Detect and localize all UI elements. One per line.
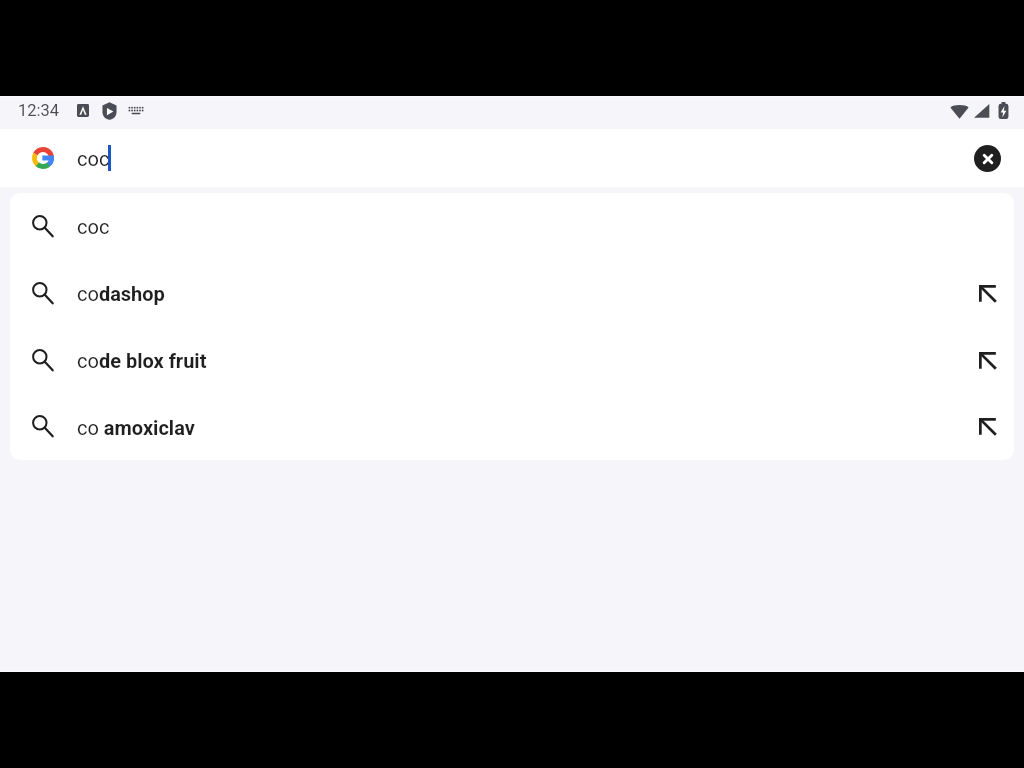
button[interactable]: Clear search: [974, 145, 1001, 172]
staticText: code blox fruit: [77, 349, 207, 372]
button[interactable]: code blox fruit: [10, 327, 1014, 394]
staticText: codashop: [77, 282, 165, 305]
staticText: 12:34: [18, 101, 60, 120]
button[interactable]: coc: [10, 193, 1014, 260]
staticText: coc: [77, 215, 110, 238]
staticText: coc: [77, 147, 110, 170]
button[interactable]: Insert suggestion: [974, 281, 1000, 307]
button[interactable]: Insert suggestion: [974, 348, 1000, 374]
staticText: co amoxiclav: [77, 416, 195, 439]
button[interactable]: co amoxiclav: [10, 394, 1014, 460]
button[interactable]: coc: [0, 129, 1024, 187]
button[interactable]: codashop: [10, 260, 1014, 327]
button[interactable]: Insert suggestion: [974, 414, 1000, 440]
